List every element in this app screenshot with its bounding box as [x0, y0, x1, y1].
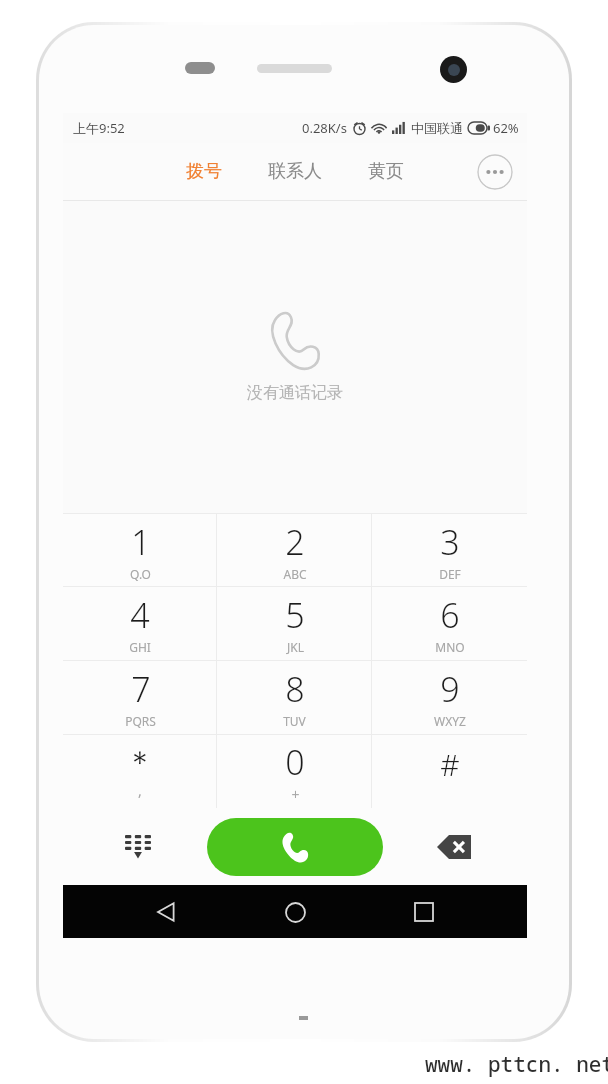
- staticText: TUV: [283, 713, 306, 729]
- staticText: 8: [285, 666, 305, 712]
- button[interactable]: 8: [217, 661, 372, 734]
- staticText: ABC: [283, 566, 307, 582]
- staticText: 9: [440, 666, 460, 712]
- button[interactable]: 6: [372, 587, 527, 660]
- button[interactable]: Recent apps: [398, 886, 450, 938]
- staticText: 2: [285, 519, 305, 565]
- staticText: ＊: [125, 743, 155, 781]
- button[interactable]: 1: [63, 514, 217, 586]
- button[interactable]: #: [372, 735, 527, 808]
- staticText: +: [291, 785, 300, 804]
- button[interactable]: Call: [207, 818, 383, 876]
- staticText: #: [440, 744, 460, 785]
- button[interactable]: 联系人: [258, 154, 332, 189]
- button[interactable]: More options: [477, 154, 513, 190]
- button[interactable]: 黄页: [358, 154, 414, 189]
- button[interactable]: Backspace: [429, 822, 479, 872]
- staticText: 拨号: [186, 160, 222, 183]
- staticText: 0.28K/s: [302, 119, 347, 137]
- staticText: MNO: [435, 639, 465, 655]
- staticText: 黄页: [368, 160, 404, 183]
- staticText: 62%: [493, 119, 519, 137]
- staticText: ,: [138, 781, 142, 800]
- staticText: www. pttcn. net: [425, 1050, 608, 1079]
- button[interactable]: 4: [63, 587, 217, 660]
- staticText: 中国联通: [411, 120, 463, 136]
- button[interactable]: 拨号: [176, 154, 232, 189]
- staticText: 上午9:52: [73, 119, 125, 137]
- staticText: JKL: [287, 639, 304, 655]
- staticText: 7: [131, 666, 151, 712]
- staticText: PQRS: [125, 713, 156, 729]
- button[interactable]: 5: [217, 587, 372, 660]
- button[interactable]: Home: [269, 886, 321, 938]
- staticText: 0: [285, 739, 305, 785]
- button[interactable]: Back: [140, 886, 192, 938]
- button[interactable]: 2: [217, 514, 372, 586]
- staticText: 没有通话记录: [247, 383, 343, 403]
- staticText: DEF: [439, 566, 461, 582]
- staticText: WXYZ: [434, 713, 466, 729]
- button[interactable]: Hide keypad: [115, 824, 161, 870]
- button[interactable]: 0: [217, 735, 372, 808]
- button[interactable]: 7: [63, 661, 217, 734]
- staticText: 联系人: [268, 160, 322, 183]
- staticText: 6: [440, 592, 460, 638]
- staticText: 3: [440, 519, 460, 565]
- staticText: GHI: [129, 639, 151, 655]
- button[interactable]: ＊: [63, 735, 217, 808]
- button[interactable]: 9: [372, 661, 527, 734]
- button[interactable]: 3: [372, 514, 527, 586]
- staticText: Q.O: [130, 566, 151, 582]
- staticText: 4: [130, 592, 150, 638]
- staticText: 1: [131, 519, 151, 565]
- staticText: 5: [285, 592, 305, 638]
